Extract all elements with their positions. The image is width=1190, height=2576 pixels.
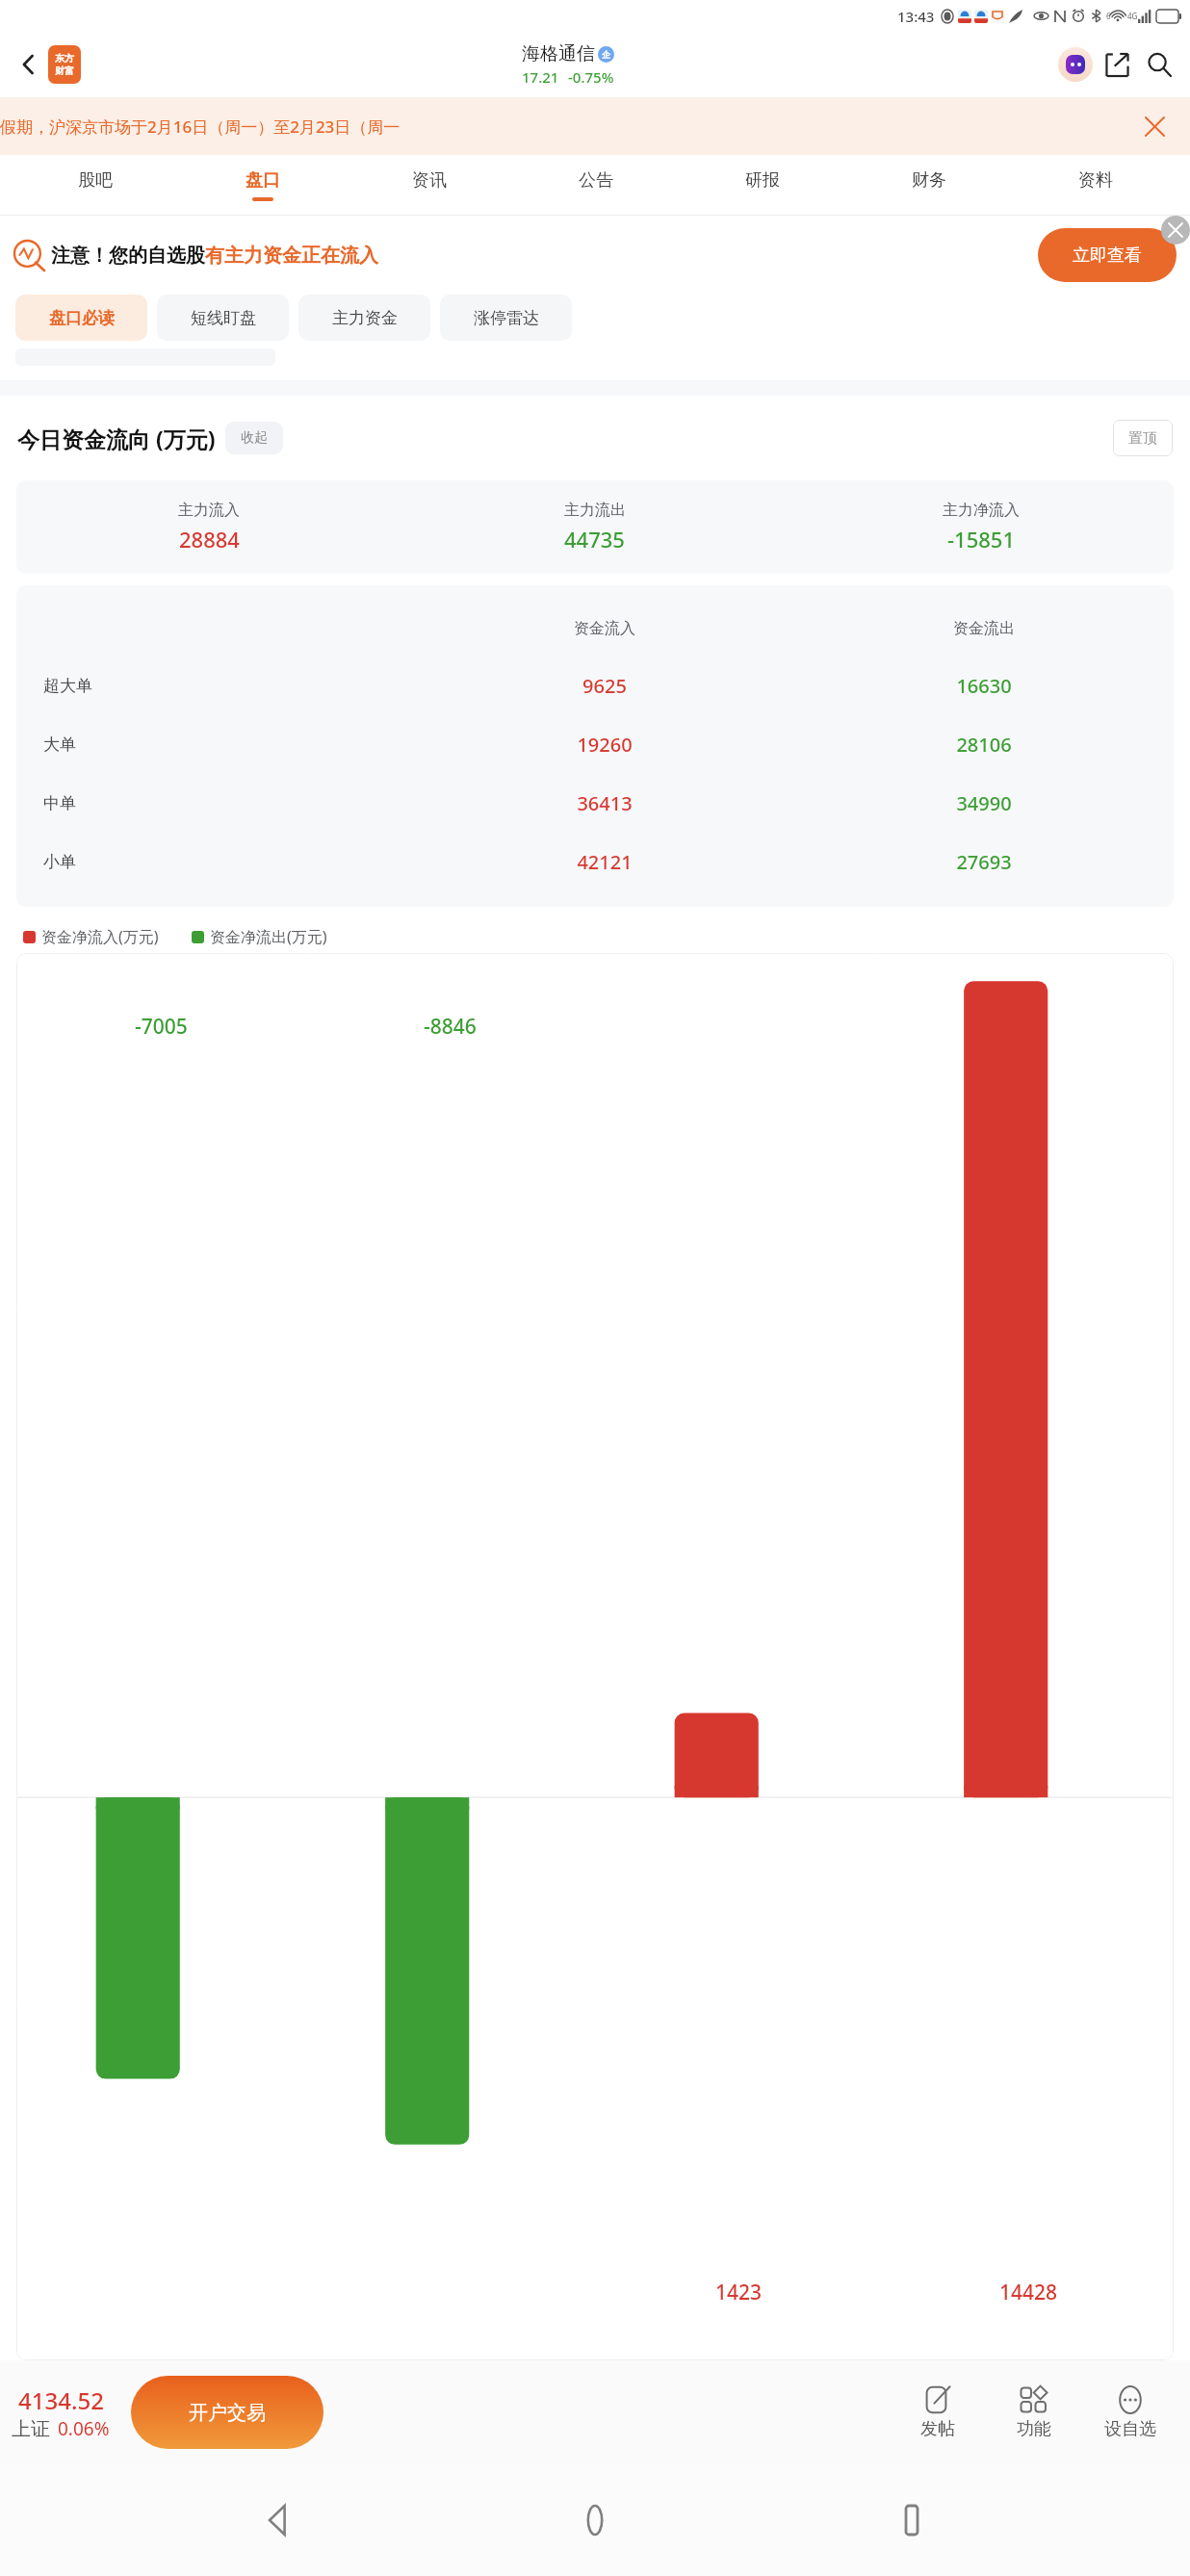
staticText: 今日资金流向 (万元) xyxy=(17,424,216,453)
staticText: 主力资金 xyxy=(332,308,398,328)
staticText: 股吧 xyxy=(78,169,113,192)
staticText: 资金净流出(万元) xyxy=(210,926,327,947)
staticText: 东方 xyxy=(55,52,74,64)
staticText: 开户交易 xyxy=(189,2401,266,2425)
staticText: 主力流出 xyxy=(564,501,626,520)
button[interactable]: 主力资金 xyxy=(298,295,430,341)
staticText: 超大单 xyxy=(43,676,415,696)
button[interactable]: 假期，沪深京市场于2月16日（周一）至2月23日（周一 xyxy=(0,97,1190,155)
staticText: -0.75% xyxy=(568,67,614,87)
button[interactable]: 主力流入 xyxy=(16,480,1174,574)
staticText: 42121 xyxy=(415,849,794,875)
staticText: 9625 xyxy=(415,673,794,699)
button[interactable]: 盘口 xyxy=(179,155,346,215)
staticText: 44735 xyxy=(564,525,625,554)
staticText: 小单 xyxy=(43,852,415,872)
button[interactable]: AI助手 xyxy=(1055,44,1096,85)
staticText: -15851 xyxy=(947,525,1015,554)
button[interactable]: Share xyxy=(1096,43,1138,86)
staticText: 设自选 xyxy=(1104,2418,1156,2440)
button[interactable]: 公告 xyxy=(512,155,679,215)
staticText: 资金流出 xyxy=(794,619,1174,638)
staticText: 36413 xyxy=(415,790,794,816)
staticText: 资金流入 xyxy=(415,619,794,638)
button[interactable]: 收起 xyxy=(225,422,283,454)
button[interactable]: 研报 xyxy=(679,155,845,215)
staticText: -7005 xyxy=(135,1013,188,1041)
staticText: 28884 xyxy=(179,525,240,554)
button[interactable]: 设自选 xyxy=(1082,2385,1178,2440)
staticText: 研报 xyxy=(745,169,780,192)
staticText: 资料 xyxy=(1078,169,1113,192)
staticText: 注意！您的自选股 xyxy=(51,244,205,268)
button[interactable]: 盘口必读 xyxy=(15,295,147,341)
button[interactable]: Back xyxy=(240,2482,317,2559)
staticText: 4G xyxy=(1127,11,1138,21)
staticText: 发帖 xyxy=(920,2418,955,2440)
staticText: 28106 xyxy=(794,732,1174,758)
staticText: 盘口必读 xyxy=(49,308,115,328)
staticText: 海格通信 xyxy=(522,42,595,65)
staticText: 功能 xyxy=(1017,2418,1051,2440)
button[interactable]: 开户交易 xyxy=(131,2376,323,2449)
button[interactable]: 功能 xyxy=(986,2385,1082,2440)
staticText: -8846 xyxy=(424,1013,477,1041)
staticText: 立即查看 xyxy=(1073,245,1142,267)
staticText: 14428 xyxy=(999,2279,1058,2306)
staticText: 1423 xyxy=(715,2279,763,2306)
staticText: 资金净流入(万元) xyxy=(41,926,159,947)
staticText: 置顶 xyxy=(1128,429,1157,448)
staticText: 17.21 xyxy=(522,67,559,87)
staticText: 盘口 xyxy=(246,169,280,192)
staticText: 上证 xyxy=(12,2417,50,2441)
button[interactable]: 4134.52 xyxy=(12,2384,110,2441)
staticText: 主力净流入 xyxy=(943,501,1020,520)
staticText: 4134.52 xyxy=(18,2384,104,2416)
button[interactable]: Close ad xyxy=(1161,216,1190,245)
button[interactable]: 财务 xyxy=(845,155,1012,215)
button[interactable]: 资金流入 xyxy=(16,585,1174,907)
staticText: 财务 xyxy=(912,169,946,192)
button[interactable]: Back xyxy=(10,45,48,84)
button[interactable]: 涨停雷达 xyxy=(440,295,572,341)
button[interactable]: Recents xyxy=(873,2482,950,2559)
staticText: 34990 xyxy=(794,790,1174,816)
button[interactable]: 立即查看 xyxy=(1038,228,1177,282)
button[interactable]: 发帖 xyxy=(890,2385,986,2440)
staticText: 中单 xyxy=(43,793,415,813)
button[interactable]: Search xyxy=(1138,43,1180,86)
button[interactable]: Home xyxy=(556,2482,634,2559)
staticText: 主力流入 xyxy=(178,501,240,520)
staticText: 有主力资金正在流入 xyxy=(205,244,378,268)
staticText: 公告 xyxy=(579,169,613,192)
button[interactable]: 资料 xyxy=(1012,155,1178,215)
staticText: 假期，沪深京市场于2月16日（周一）至2月23日（周一 xyxy=(0,116,401,138)
staticText: 企 xyxy=(602,49,610,60)
staticText: 0.06% xyxy=(58,2416,110,2441)
button[interactable]: 短线盯盘 xyxy=(157,295,289,341)
button[interactable]: 东方财富 xyxy=(48,45,81,84)
button[interactable]: Close xyxy=(1138,110,1171,142)
staticText: 13:43 xyxy=(897,7,935,26)
button[interactable]: -7005 xyxy=(16,953,1174,2360)
button[interactable]: 资讯 xyxy=(346,155,512,215)
staticText: 6 xyxy=(1106,11,1111,21)
staticText: 16630 xyxy=(794,673,1174,699)
staticText: 短线盯盘 xyxy=(191,308,256,328)
button[interactable]: 置顶 xyxy=(1113,420,1173,456)
staticText: 27693 xyxy=(794,849,1174,875)
staticText: 涨停雷达 xyxy=(474,308,539,328)
button[interactable]: 股吧 xyxy=(12,155,179,215)
staticText: 大单 xyxy=(43,734,415,755)
staticText: 财富 xyxy=(55,64,74,77)
staticText: 资讯 xyxy=(412,169,447,192)
staticText: 19260 xyxy=(415,732,794,758)
staticText: 收起 xyxy=(241,429,268,447)
